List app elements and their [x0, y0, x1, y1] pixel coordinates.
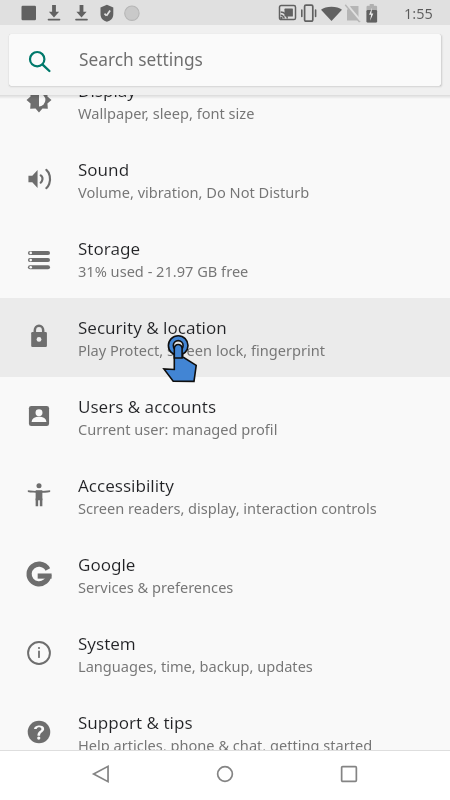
button[interactable]: Back — [71, 751, 131, 800]
staticText: Search settings — [79, 48, 203, 72]
button[interactable]: Sound — [0, 140, 450, 219]
staticText: Users & accounts — [78, 395, 217, 418]
staticText: Sound — [78, 158, 130, 181]
staticText: Languages, time, backup, updates — [78, 656, 313, 676]
staticText: Display — [78, 79, 136, 102]
staticText: Google — [78, 553, 136, 576]
staticText: System — [78, 632, 136, 655]
staticText: Play Protect, screen lock, fingerprint — [78, 340, 326, 360]
staticText: Help articles, phone & chat, getting sta… — [78, 735, 373, 751]
button[interactable]: Support & tips — [0, 693, 450, 751]
button[interactable]: Recent apps — [319, 751, 379, 800]
staticText: Accessibility — [78, 474, 174, 497]
button[interactable]: System — [0, 614, 450, 693]
button[interactable]: Search settings — [9, 34, 441, 86]
button[interactable]: Storage — [0, 219, 450, 298]
staticText: 1:55 — [404, 3, 433, 23]
button[interactable]: Accessibility — [0, 456, 450, 535]
staticText: Support & tips — [78, 711, 193, 734]
staticText: Security & location — [78, 316, 227, 339]
staticText: Screen readers, display, interaction con… — [78, 498, 377, 518]
button[interactable]: Home — [195, 751, 255, 800]
button[interactable]: Users & accounts — [0, 377, 450, 456]
button[interactable]: Google — [0, 535, 450, 614]
staticText: Wallpaper, sleep, font size — [78, 103, 255, 123]
staticText: Current user: managed profil — [78, 419, 278, 439]
button[interactable]: Security & location — [0, 298, 450, 377]
staticText: Storage — [78, 237, 141, 260]
staticText: 31% used - 21.97 GB free — [78, 261, 249, 281]
staticText: Volume, vibration, Do Not Disturb — [78, 182, 310, 202]
button[interactable]: Display — [0, 61, 450, 140]
staticText: Services & preferences — [78, 577, 234, 597]
